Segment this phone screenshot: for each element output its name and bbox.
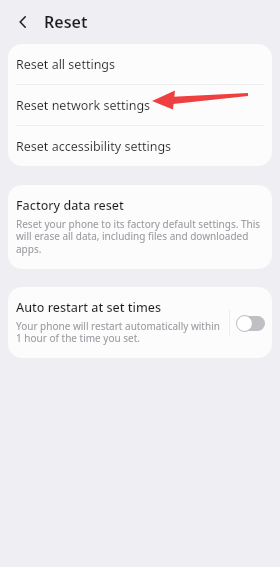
button[interactable]: Back [10, 9, 36, 35]
button[interactable]: Auto restart at set times [8, 287, 229, 358]
button[interactable]: Factory data reset [8, 185, 272, 269]
staticText: Auto restart at set times [16, 299, 161, 316]
staticText: Factory data reset [16, 197, 124, 214]
staticText: Your phone will restart automatically wi… [16, 319, 225, 345]
staticText: Reset network settings [16, 97, 262, 114]
button[interactable]: Reset accessibility settings [8, 126, 272, 166]
button[interactable]: Auto restart toggle [230, 303, 272, 343]
staticText: Reset [44, 11, 88, 33]
button[interactable]: Reset network settings [8, 85, 272, 125]
staticText: Reset all settings [16, 56, 262, 73]
button[interactable]: Reset all settings [8, 44, 272, 84]
staticText: Reset your phone to its factory default … [16, 217, 262, 256]
staticText: Reset accessibility settings [16, 138, 262, 155]
